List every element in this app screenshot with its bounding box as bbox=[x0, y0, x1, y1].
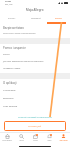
staticText: Oceń aplikację bbox=[3, 105, 18, 108]
staticText: WYLOGUJ SIĘ bbox=[28, 125, 42, 128]
staticText: Oferty bbox=[47, 140, 52, 142]
button[interactable]: Koszyk bbox=[28, 133, 42, 142]
staticText: Strona główna bbox=[2, 140, 12, 142]
staticText: pon, 3 cze bbox=[5, 3, 13, 5]
button[interactable]: Akademia Allegro bbox=[0, 65, 70, 72]
button[interactable]: ZAKUPY bbox=[0, 13, 24, 23]
staticText: O programie bbox=[3, 89, 16, 92]
button[interactable]: SPRZEDAŻ bbox=[24, 13, 47, 23]
button[interactable]: Moje Allegro bbox=[56, 133, 70, 142]
staticText: 12:30 bbox=[5, 0, 11, 3]
staticText: Moje Allegro bbox=[59, 140, 68, 142]
staticText: Jak robić bezpiecznie zakupy w interneci… bbox=[3, 60, 44, 63]
staticText: Akademia Allegro bbox=[3, 67, 21, 70]
staticText: Pomoc bbox=[3, 53, 10, 56]
staticText: O aplikacji bbox=[3, 81, 17, 85]
staticText: Moja Allegro bbox=[26, 8, 44, 12]
staticText: SPRZEDAŻ bbox=[31, 17, 41, 20]
button[interactable]: KONTO bbox=[47, 13, 70, 23]
staticText: ZAKUPY bbox=[8, 17, 16, 20]
button[interactable]: O programie bbox=[0, 86, 70, 94]
staticText: Zmień hasło i zadbaj o bezpieczeństwo bbox=[3, 32, 36, 34]
button[interactable]: WYCZYŚĆ HISTORIĘ WYSZUKIWANIA bbox=[0, 115, 70, 119]
staticText: Koszyk bbox=[33, 140, 38, 142]
button[interactable]: Pomoc bbox=[0, 51, 70, 58]
button[interactable]: Jak robić bezpiecznie zakupy w interneci… bbox=[0, 58, 70, 65]
staticText: Regulamin bbox=[3, 97, 14, 100]
staticText: Bezpieczeństwo bbox=[3, 26, 24, 30]
staticText: Szukaj bbox=[19, 140, 24, 142]
button[interactable]: Oferty bbox=[42, 133, 56, 142]
button[interactable]: Regulamin bbox=[0, 94, 70, 102]
button[interactable]: Szukaj bbox=[14, 133, 28, 142]
staticText: WYCZYŚĆ HISTORIĘ WYSZUKIWANIA bbox=[18, 116, 52, 119]
staticText: Pomoc i wsparcie bbox=[3, 46, 26, 50]
staticText: KONTO bbox=[55, 17, 62, 20]
button[interactable]: Strona główna bbox=[0, 133, 14, 142]
button[interactable]: WYLOGUJ SIĘ bbox=[4, 121, 66, 131]
button[interactable]: Oceń aplikację bbox=[0, 102, 70, 110]
